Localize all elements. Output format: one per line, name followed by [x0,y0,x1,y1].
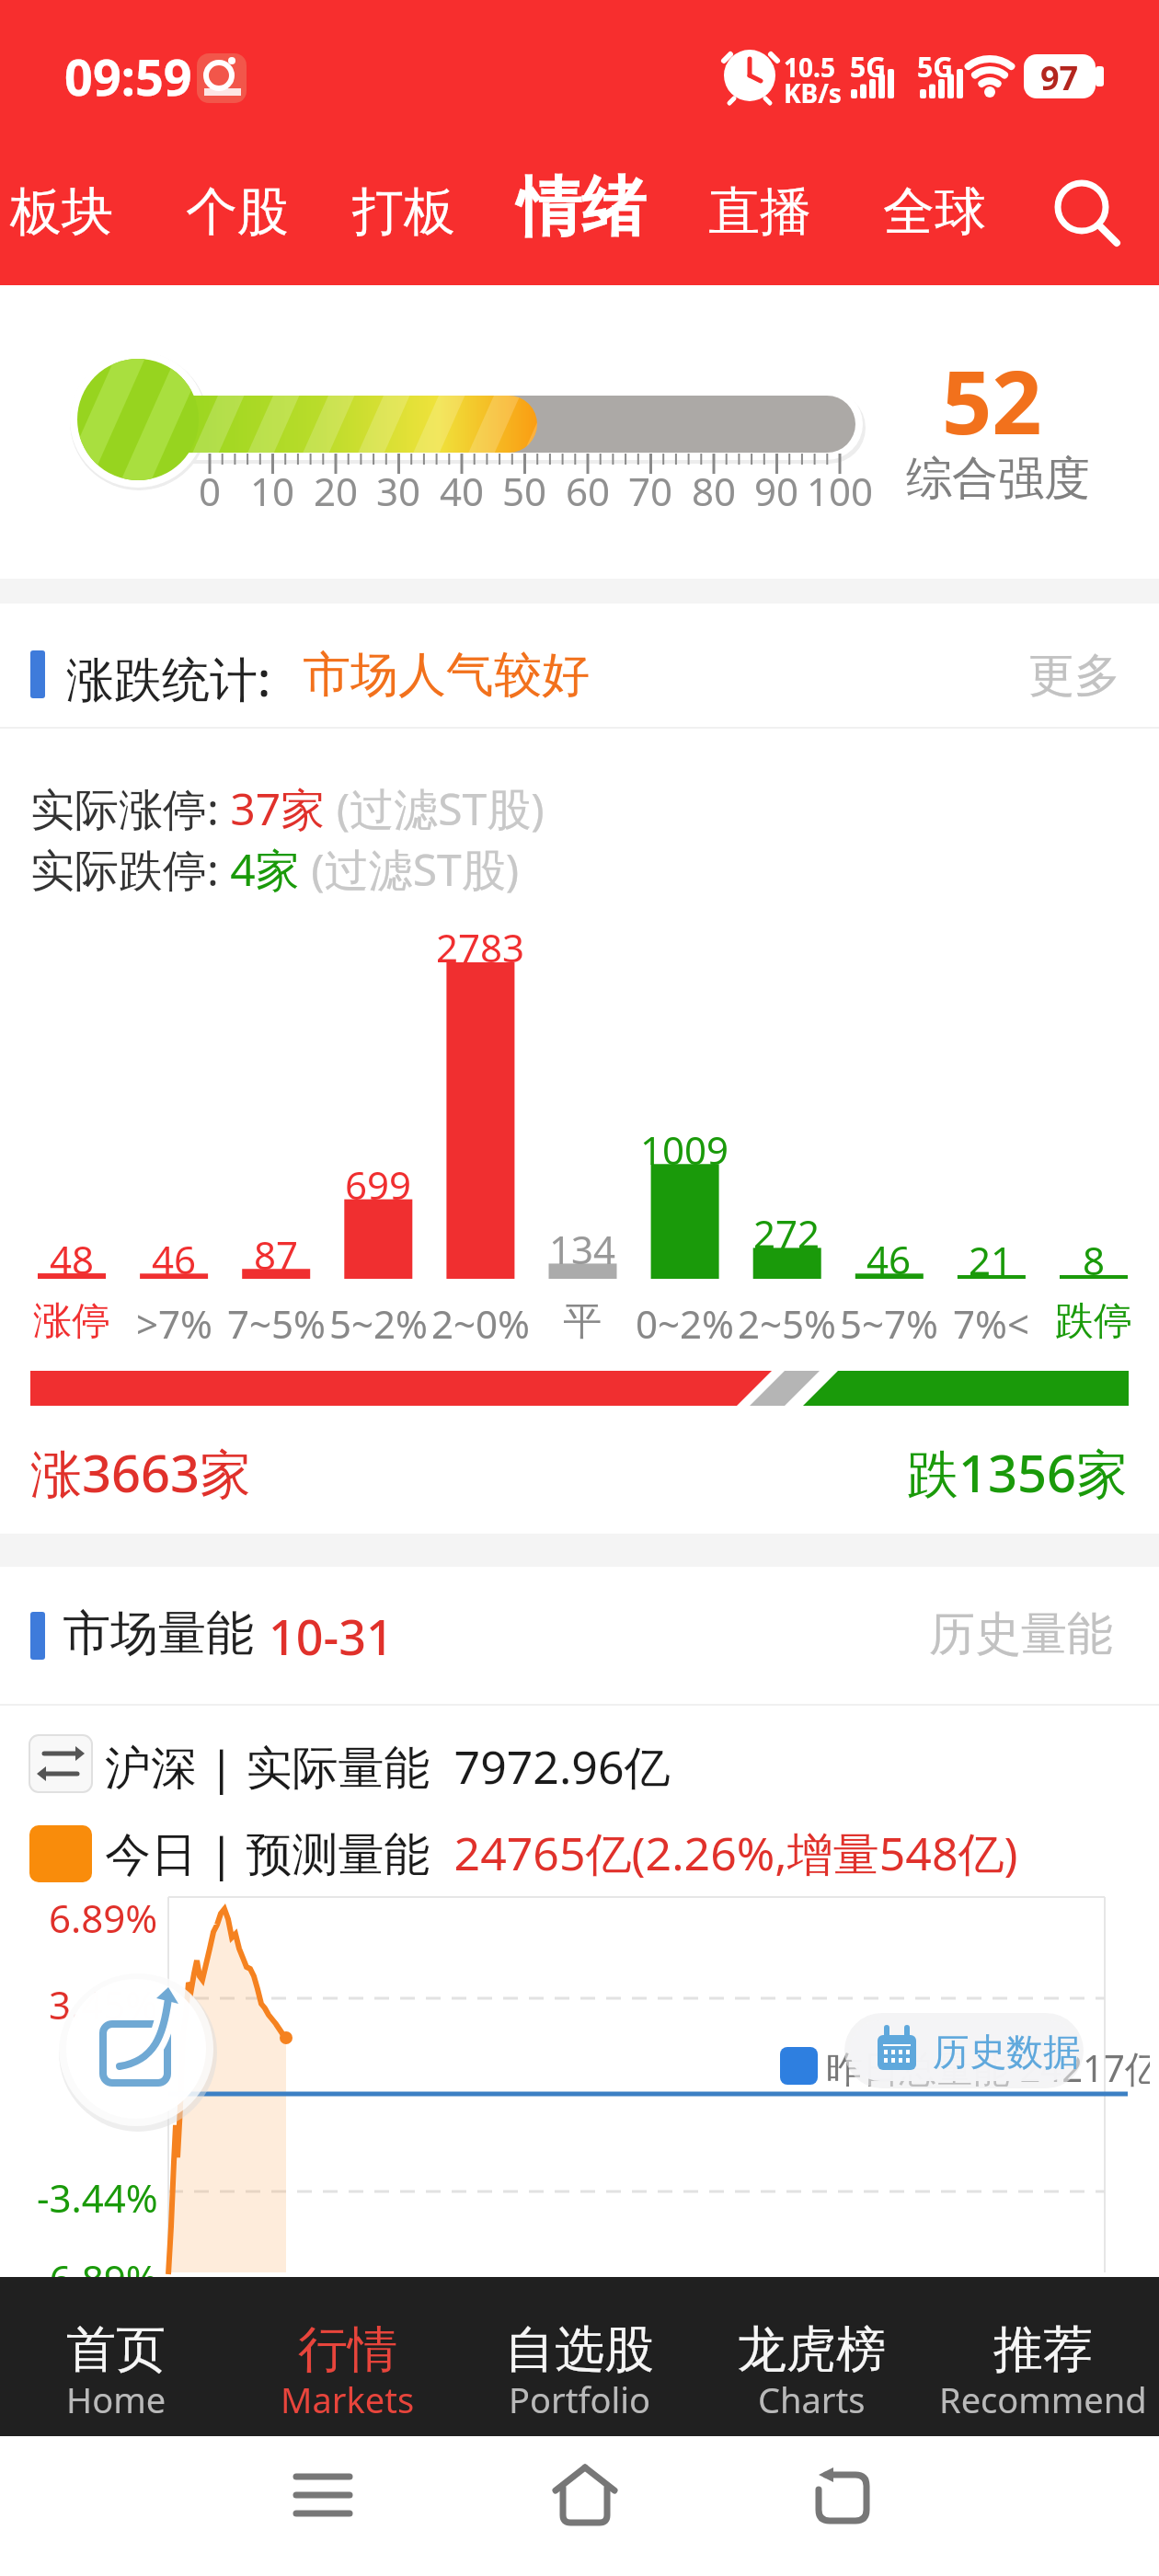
staticText: 市场量能 [63,1604,254,1664]
staticText: 10-31 [269,1604,394,1664]
staticText: 实际跌停: 4家 (过滤ST股) [30,839,520,896]
staticText: 48 [50,1233,95,1279]
staticText: 97 [1040,55,1079,98]
staticText: 10.5 [784,50,835,79]
staticText: 46 [152,1233,197,1279]
staticText: 历史量能 [929,1605,1113,1662]
staticText: 7%< [953,1297,1029,1345]
staticText: 平 [563,1297,602,1345]
staticText: 个股 [186,179,289,245]
staticText: 70 [628,465,673,511]
staticText: 历史数据 [933,2029,1080,2075]
staticText: 52 [942,340,1042,442]
staticText: 自选股 [505,2318,654,2379]
staticText: 5~2% [329,1297,428,1345]
staticText: Recommend [939,2375,1147,2418]
staticText: 100 [807,465,874,511]
staticText: 40 [440,465,485,511]
staticText: >7% [136,1297,212,1345]
staticText: 情绪 [517,167,646,248]
staticText: 跌停 [1055,1297,1132,1345]
staticText: 7~5% [227,1297,326,1345]
staticText: KB/s [784,75,842,105]
staticText: 涨跌统计: [66,645,271,706]
staticText: 昨日总量能 24217亿 [826,2042,1150,2088]
staticText: 行情 [298,2318,397,2379]
staticText: 综合强度 [906,450,1090,500]
staticText: Portfolio [509,2375,651,2418]
staticText: 699 [345,1158,412,1204]
staticText: 跌1356家 [907,1437,1129,1500]
staticText: 今日 | 预测量能 24765亿(2.26%,增量548亿) [105,1822,1018,1882]
staticText: Home [66,2375,166,2418]
staticText: -3.44% [37,2171,158,2214]
staticText: 80 [692,465,737,511]
staticText: 2~5% [738,1297,836,1345]
staticText: 0 [199,465,222,511]
staticText: 09:59 [64,42,192,109]
staticText: 更多 [1028,647,1120,704]
staticText: 全球 [883,179,986,245]
staticText: 涨停 [33,1297,110,1345]
staticText: 46 [866,1233,912,1279]
staticText: 30 [376,465,421,511]
staticText: 5~7% [840,1297,938,1345]
staticText: 实际涨停: 37家 (过滤ST股) [30,778,545,835]
staticText: 8 [1083,1234,1106,1280]
staticText: 直播 [708,179,811,245]
staticText: 2783 [436,921,525,967]
staticText: 首页 [66,2318,166,2379]
staticText: 272 [753,1207,820,1253]
staticText: -6.89% [37,2252,158,2294]
staticText: Charts [758,2375,866,2418]
staticText: 市场人气较好 [303,645,590,706]
staticText: 3.45% [49,1978,158,2020]
staticText: 龙虎榜 [737,2318,886,2379]
staticText: 推荐 [993,2318,1093,2379]
staticText: 2~0% [431,1297,530,1345]
staticText: 87 [254,1228,299,1274]
staticText: 5G [917,48,953,79]
staticText: 沪深 | 实际量能 7972.96亿 [105,1735,671,1796]
staticText: 1009 [640,1123,729,1169]
staticText: 涨3663家 [30,1437,252,1500]
staticText: 60 [566,465,611,511]
staticText: 134 [549,1223,616,1269]
staticText: 90 [754,465,799,511]
staticText: 板块 [10,179,113,245]
staticText: 50 [502,465,547,511]
staticText: 10 [250,465,295,511]
staticText: 21 [969,1234,1014,1280]
staticText: 6.89% [49,1892,158,1934]
staticText: 5G [850,48,886,79]
staticText: 0~2% [636,1297,734,1345]
staticText: 打板 [352,179,455,245]
staticText: 20 [314,465,359,511]
staticText: 0 [138,2075,158,2117]
staticText: Markets [281,2375,415,2418]
